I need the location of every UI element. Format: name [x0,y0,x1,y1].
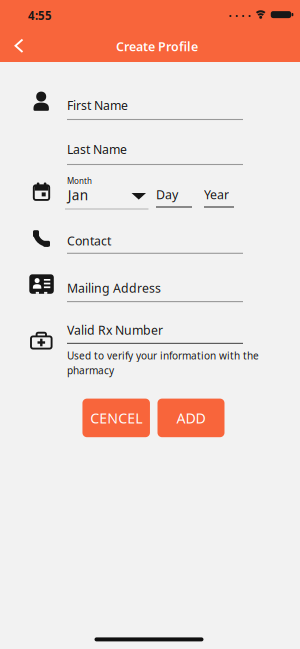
staticText: 4:55 [28,8,52,23]
staticText: Year [204,186,229,203]
button[interactable]: Back [1,31,31,61]
button[interactable]: CENCEL [82,399,150,437]
button[interactable]: Contact [67,231,243,255]
button[interactable]: Month picker [65,184,149,207]
staticText: Create Profile [116,38,198,55]
staticText: Day [156,186,178,203]
staticText: First Name [67,97,128,114]
staticText: pharmacy [67,363,114,377]
staticText: Used to verify your information with the [67,349,259,362]
staticText: Mailing Address [67,280,161,296]
button[interactable]: Year [204,184,234,209]
button[interactable]: Day [156,184,192,209]
staticText: Month [67,175,92,186]
button[interactable]: Mailing Address [67,278,243,303]
staticText: CENCEL [90,408,142,427]
staticText: Last Name [67,141,127,157]
button[interactable]: First Name [67,95,243,121]
staticText: Valid Rx Number [67,322,163,338]
button[interactable]: ADD [157,399,224,437]
button[interactable]: Last Name [67,139,243,166]
button[interactable]: Valid Rx Number [67,320,243,345]
staticText: ADD [176,408,205,427]
staticText: Contact [67,232,111,249]
staticText: Jan [68,186,88,204]
